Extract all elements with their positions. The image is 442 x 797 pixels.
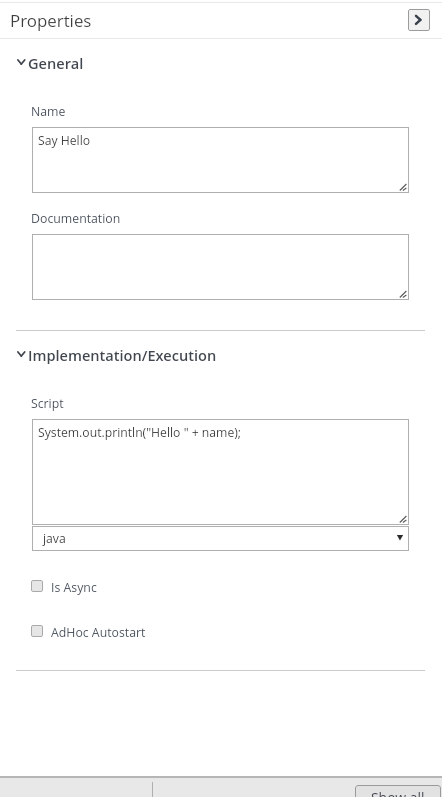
staticText: Show all xyxy=(371,788,425,797)
button[interactable]: Expand panel xyxy=(408,9,430,31)
staticText: Implementation/Execution xyxy=(28,345,217,365)
staticText: System.out.println("Hello " + name); xyxy=(38,424,242,441)
staticText: java xyxy=(43,530,66,547)
button[interactable]: Say Hello xyxy=(32,127,409,193)
staticText: AdHoc Autostart xyxy=(51,624,146,641)
button[interactable]: AdHoc Autostart xyxy=(0,621,442,641)
button[interactable]: java xyxy=(32,526,409,551)
button[interactable] xyxy=(32,234,409,300)
staticText: Is Async xyxy=(51,579,97,596)
staticText: Script xyxy=(31,395,64,412)
staticText: Say Hello xyxy=(38,132,91,149)
button[interactable]: System.out.println("Hello " + name); xyxy=(32,419,409,525)
button[interactable]: General xyxy=(0,52,442,74)
button[interactable]: Properties xyxy=(0,3,442,38)
staticText: Name xyxy=(31,103,66,120)
button[interactable]: Show all xyxy=(355,785,441,797)
staticText: Properties xyxy=(10,9,92,32)
staticText: General xyxy=(28,53,84,73)
staticText: Documentation xyxy=(31,210,121,227)
button[interactable]: Is Async xyxy=(0,576,442,596)
button[interactable]: Implementation/Execution xyxy=(0,344,442,366)
